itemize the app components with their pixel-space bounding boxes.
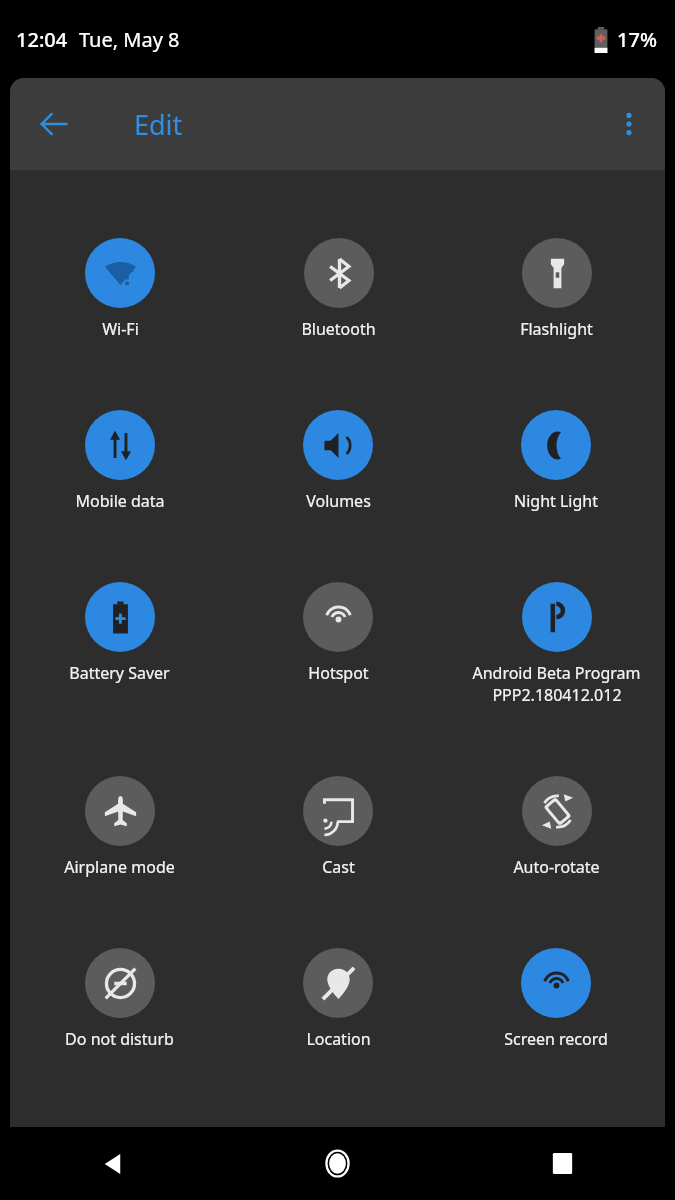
button[interactable]: Battery Saver: [69, 582, 170, 684]
staticText: Auto-rotate: [513, 856, 600, 878]
button[interactable]: Hotspot: [303, 582, 373, 684]
button[interactable]: Back: [30, 100, 78, 148]
staticText: Airplane mode: [64, 856, 175, 878]
staticText: Edit: [134, 106, 183, 143]
other: Battery Saver: [85, 582, 155, 652]
staticText: Mobile data: [75, 490, 165, 512]
button[interactable]: Bluetooth: [301, 238, 376, 340]
staticText: Bluetooth: [301, 318, 376, 340]
other: Location: [303, 948, 373, 1018]
staticText: Do not disturb: [65, 1028, 174, 1050]
other: Do not disturb: [85, 948, 155, 1018]
staticText: Hotspot: [308, 662, 369, 684]
button[interactable]: Airplane mode: [64, 776, 175, 878]
other: Bluetooth: [304, 238, 374, 308]
button[interactable]: Do not disturb: [65, 948, 174, 1050]
button[interactable]: Recent apps: [450, 1127, 675, 1200]
staticText: Android Beta Program: [472, 662, 641, 684]
staticText: Tue, May 8: [79, 26, 180, 53]
other: Screen record: [521, 948, 591, 1018]
button[interactable]: Volumes: [303, 410, 373, 512]
other: Airplane mode: [85, 776, 155, 846]
staticText: Volumes: [306, 490, 371, 512]
other: Cast: [303, 776, 373, 846]
button[interactable]: Screen record: [504, 948, 608, 1050]
button[interactable]: Night Light: [514, 410, 598, 512]
button[interactable]: More options: [605, 100, 653, 148]
other: Hotspot: [303, 582, 373, 652]
button[interactable]: Cast: [303, 776, 373, 878]
button[interactable]: Location: [303, 948, 373, 1050]
staticText: 17%: [617, 26, 657, 53]
button[interactable]: Android Beta Program: [472, 582, 641, 706]
other: Auto-rotate: [522, 776, 592, 846]
button[interactable]: Flashlight: [520, 238, 593, 340]
staticText: PPP2.180412.012: [492, 684, 622, 706]
staticText: Flashlight: [520, 318, 593, 340]
button[interactable]: Back: [0, 1127, 225, 1200]
button[interactable]: Home: [225, 1127, 450, 1200]
button[interactable]: Wi-Fi: [85, 238, 155, 340]
other: Flashlight: [522, 238, 592, 308]
button[interactable]: Auto-rotate: [513, 776, 600, 878]
other: Night Light: [521, 410, 591, 480]
button[interactable]: Mobile data: [75, 410, 165, 512]
staticText: 12:04: [16, 26, 68, 53]
other: Wi-Fi: [85, 238, 155, 308]
staticText: Cast: [322, 856, 355, 878]
staticText: Night Light: [514, 490, 598, 512]
staticText: Wi-Fi: [102, 318, 139, 340]
other: Android Beta Program: [522, 582, 592, 652]
staticText: Battery Saver: [69, 662, 170, 684]
staticText: Screen record: [504, 1028, 608, 1050]
other: Mobile data: [85, 410, 155, 480]
other: Volumes: [303, 410, 373, 480]
staticText: Location: [306, 1028, 371, 1050]
